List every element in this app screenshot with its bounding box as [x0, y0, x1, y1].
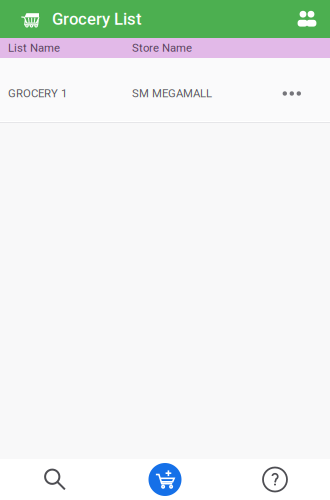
staticText: SM MEGAMALL	[132, 87, 212, 100]
button[interactable]: Search	[0, 459, 110, 499]
staticText: List Name	[8, 41, 60, 55]
staticText: Store Name	[132, 41, 192, 55]
button[interactable]: GROCERY 1	[0, 58, 330, 121]
button[interactable]: Share list	[297, 0, 330, 38]
button[interactable]: Add grocery list	[110, 459, 220, 499]
button[interactable]: Help	[220, 459, 330, 499]
staticText: GROCERY 1	[8, 87, 67, 100]
staticText: Grocery List	[52, 9, 142, 29]
